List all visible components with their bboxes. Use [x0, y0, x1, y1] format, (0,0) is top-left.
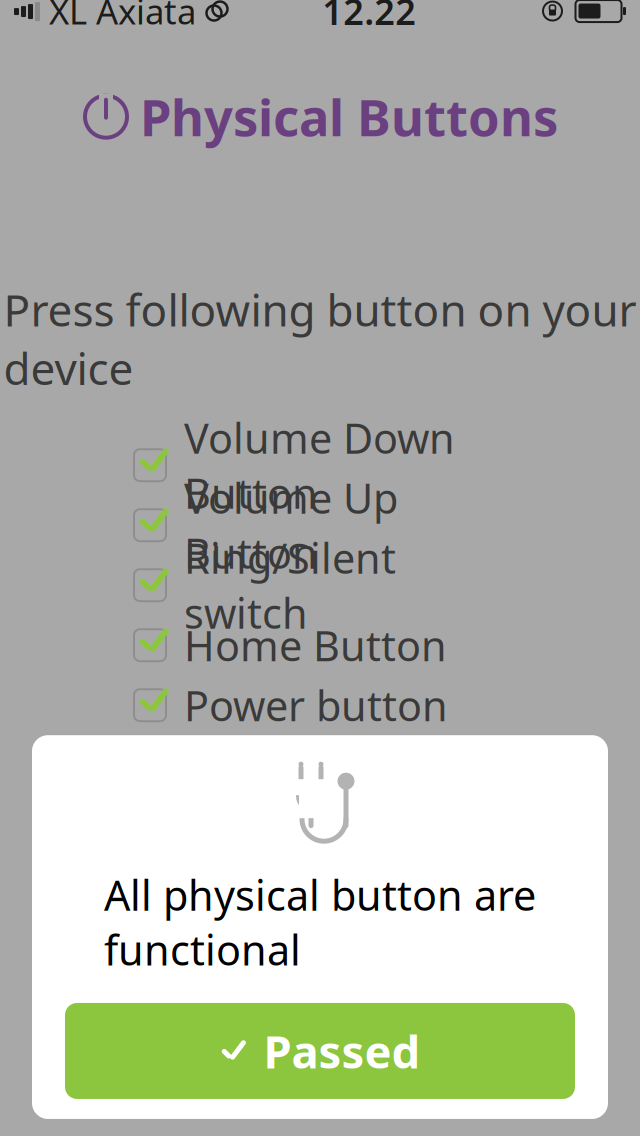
staticText: Physical Buttons: [140, 83, 558, 150]
staticText: Volume Up Button: [184, 470, 398, 580]
button[interactable]: Ring/Silent switch: [130, 555, 510, 615]
staticText: Home Button: [184, 618, 447, 673]
staticText: Passed: [263, 1021, 420, 1081]
staticText: Press following button on your device: [3, 280, 636, 397]
button[interactable]: Passed: [65, 1003, 575, 1099]
button[interactable]: Home Button: [130, 615, 510, 675]
staticText: All physical button are functional: [104, 867, 536, 977]
staticText: Volume Down Button: [184, 410, 455, 520]
button[interactable]: Volume Up Button: [130, 495, 510, 555]
staticText: XL Axiata: [49, 0, 196, 34]
button[interactable]: Volume Down Button: [130, 435, 510, 495]
button[interactable]: Power button: [130, 675, 510, 735]
staticText: 12.22: [322, 0, 416, 35]
staticText: Power button: [184, 678, 448, 733]
staticText: Ring/Silent switch: [184, 530, 396, 640]
